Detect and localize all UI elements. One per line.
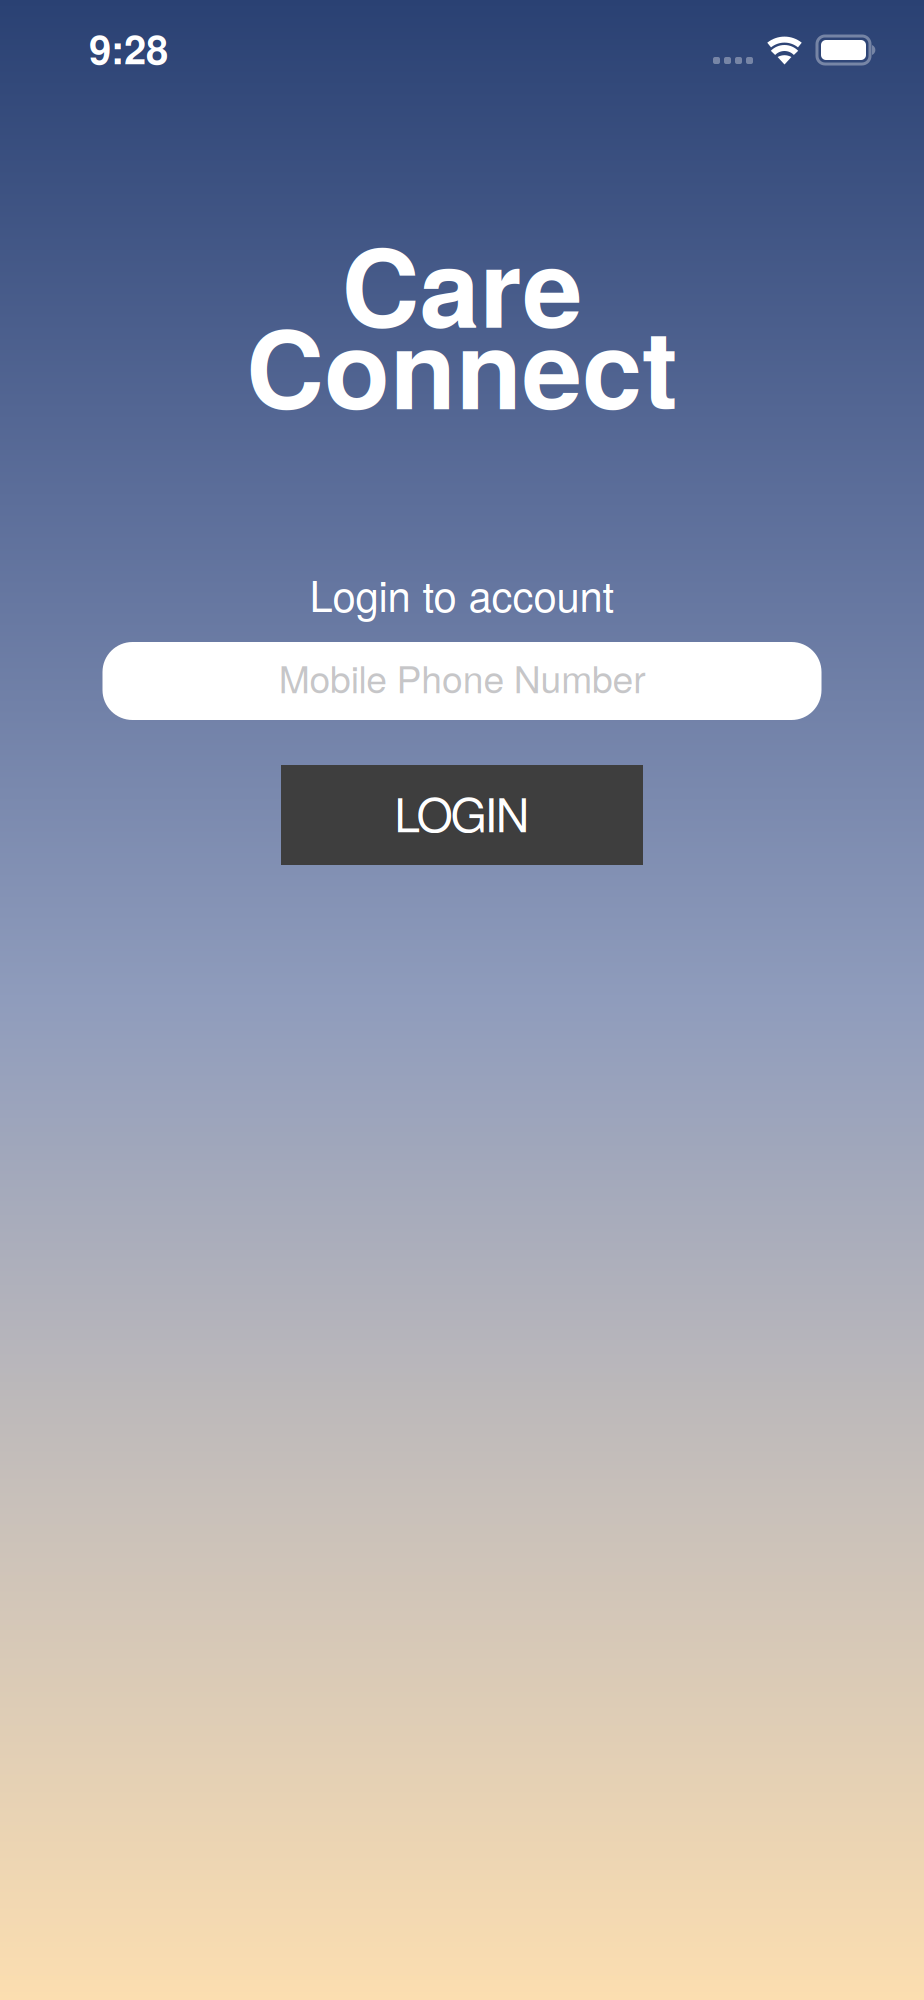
button[interactable]: Mobile Phone Number bbox=[102, 642, 821, 720]
staticText: 9:28 bbox=[89, 19, 168, 77]
button[interactable]: LOGIN bbox=[281, 765, 643, 865]
staticText: Connect bbox=[246, 288, 678, 442]
staticText: LOGIN bbox=[394, 779, 530, 845]
staticText: Mobile Phone Number bbox=[279, 650, 645, 704]
staticText: Login to account bbox=[309, 564, 614, 624]
staticText: Care bbox=[341, 206, 582, 361]
